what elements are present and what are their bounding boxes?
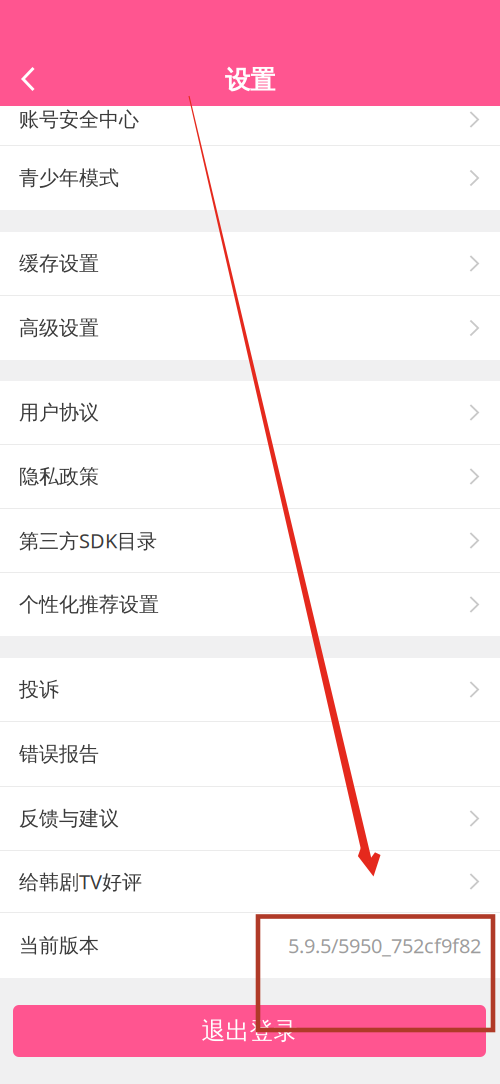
button[interactable]: 账号安全中心: [0, 106, 500, 145]
staticText: 第三方SDK目录: [19, 527, 157, 554]
button[interactable]: 给韩剧TV好评: [0, 851, 500, 912]
staticText: 给韩剧TV好评: [19, 868, 142, 895]
button[interactable]: Back: [8, 53, 49, 105]
staticText: 5.9.5/5950_752cf9f82: [288, 932, 481, 959]
button[interactable]: 用户协议: [0, 381, 500, 444]
staticText: 个性化推荐设置: [19, 592, 159, 617]
button[interactable]: 错误报告: [0, 722, 500, 786]
staticText: 错误报告: [19, 742, 99, 766]
staticText: 设置: [225, 64, 275, 95]
staticText: 缓存设置: [19, 251, 99, 276]
button[interactable]: 反馈与建议: [0, 787, 500, 850]
staticText: 隐私政策: [19, 464, 99, 489]
staticText: 用户协议: [19, 400, 99, 425]
button[interactable]: 缓存设置: [0, 232, 500, 295]
staticText: 青少年模式: [19, 166, 119, 190]
button[interactable]: 退出登录: [13, 1005, 486, 1057]
button[interactable]: 个性化推荐设置: [0, 573, 500, 636]
staticText: 账号安全中心: [19, 107, 139, 132]
button[interactable]: 高级设置: [0, 296, 500, 360]
staticText: 退出登录: [201, 1016, 297, 1046]
staticText: 高级设置: [19, 316, 99, 340]
button[interactable]: 投诉: [0, 658, 500, 721]
button[interactable]: 第三方SDK目录: [0, 509, 500, 572]
staticText: 当前版本: [19, 933, 99, 958]
staticText: 反馈与建议: [19, 806, 119, 831]
staticText: 投诉: [19, 677, 59, 702]
button[interactable]: 当前版本: [0, 913, 500, 978]
button[interactable]: 青少年模式: [0, 146, 500, 210]
button[interactable]: 隐私政策: [0, 445, 500, 508]
